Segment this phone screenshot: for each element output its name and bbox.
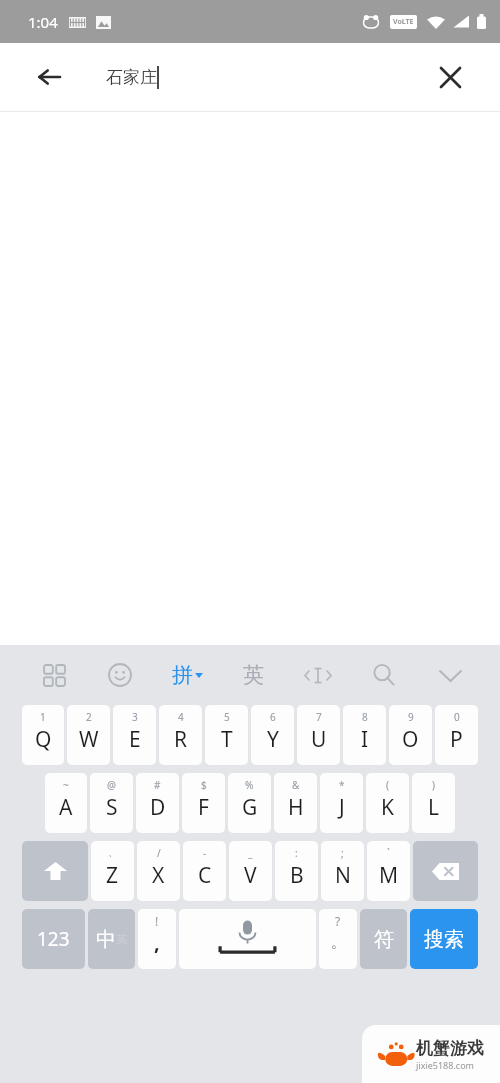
staticText: - bbox=[203, 846, 207, 860]
staticText: O bbox=[402, 725, 419, 754]
button[interactable]: 4 bbox=[159, 705, 202, 765]
staticText: W bbox=[79, 725, 99, 754]
staticText: S bbox=[106, 793, 118, 822]
button[interactable]: 9 bbox=[389, 705, 432, 765]
staticText: VoLTE bbox=[393, 17, 414, 27]
staticText: 。 bbox=[331, 934, 345, 952]
button[interactable]: 8 bbox=[343, 705, 386, 765]
staticText: _ bbox=[248, 846, 253, 860]
button[interactable]: 123 bbox=[22, 909, 85, 969]
staticText: 3 bbox=[132, 710, 138, 724]
button[interactable]: 中 bbox=[88, 909, 135, 969]
staticText: D bbox=[150, 793, 166, 822]
staticText: 4 bbox=[178, 710, 184, 724]
staticText: 6 bbox=[270, 710, 276, 724]
staticText: 123 bbox=[37, 926, 70, 952]
staticText: 1 bbox=[40, 710, 46, 724]
button[interactable]: @ bbox=[90, 773, 133, 833]
button[interactable]: Emoji bbox=[102, 657, 138, 693]
staticText: / bbox=[157, 846, 161, 860]
button[interactable]: 0 bbox=[435, 705, 478, 765]
staticText: # bbox=[154, 778, 161, 792]
button[interactable]: Back bbox=[27, 55, 71, 99]
staticText: ; bbox=[341, 846, 344, 860]
button[interactable]: Clear bbox=[428, 55, 472, 99]
button[interactable]: ` bbox=[367, 841, 410, 901]
staticText: N bbox=[335, 861, 351, 890]
staticText: 1:04 bbox=[28, 12, 58, 32]
staticText: 机蟹游戏 bbox=[416, 1038, 484, 1059]
button[interactable]: 2 bbox=[67, 705, 110, 765]
staticText: 石家庄 bbox=[106, 67, 157, 88]
staticText: 、 bbox=[108, 846, 118, 859]
staticText: M bbox=[379, 861, 399, 890]
staticText: & bbox=[292, 778, 300, 792]
button[interactable]: * bbox=[320, 773, 363, 833]
staticText: ` bbox=[387, 846, 390, 860]
button[interactable]: 搜索 bbox=[410, 909, 478, 969]
button[interactable]: ) bbox=[412, 773, 455, 833]
button[interactable]: ( bbox=[366, 773, 409, 833]
staticText: 英 bbox=[116, 932, 127, 946]
staticText: J bbox=[339, 793, 345, 822]
button[interactable]: Layouts bbox=[36, 657, 72, 693]
staticText: Y bbox=[267, 725, 279, 754]
staticText: * bbox=[339, 778, 345, 792]
staticText: C bbox=[198, 861, 212, 890]
staticText: ~ bbox=[63, 778, 69, 792]
staticText: 8 bbox=[362, 710, 368, 724]
staticText: B bbox=[290, 861, 304, 890]
staticText: T bbox=[221, 725, 233, 754]
button[interactable]: & bbox=[274, 773, 317, 833]
staticText: @ bbox=[107, 778, 116, 792]
button[interactable]: Search bbox=[366, 657, 402, 693]
staticText: 中 bbox=[96, 927, 116, 952]
staticText: I bbox=[361, 725, 369, 754]
staticText: ) bbox=[432, 778, 435, 792]
button[interactable]: 英 bbox=[237, 656, 270, 694]
staticText: K bbox=[381, 793, 394, 822]
button[interactable]: : bbox=[275, 841, 318, 901]
button[interactable]: $ bbox=[182, 773, 225, 833]
button[interactable]: Shift bbox=[22, 841, 88, 901]
staticText: L bbox=[428, 793, 440, 822]
button[interactable]: Space bbox=[179, 909, 316, 969]
button[interactable]: 1 bbox=[22, 705, 64, 765]
staticText: Q bbox=[35, 725, 52, 754]
button[interactable]: 5 bbox=[205, 705, 248, 765]
staticText: 搜索 bbox=[424, 927, 464, 952]
staticText: jixie5188.com bbox=[416, 1059, 474, 1071]
staticText: $ bbox=[201, 778, 207, 792]
button[interactable]: 6 bbox=[251, 705, 294, 765]
staticText: 7 bbox=[316, 710, 322, 724]
staticText: P bbox=[450, 725, 463, 754]
button[interactable]: ; bbox=[321, 841, 364, 901]
staticText: , bbox=[154, 929, 160, 956]
staticText: U bbox=[311, 725, 327, 754]
button[interactable]: % bbox=[228, 773, 271, 833]
button[interactable]: / bbox=[137, 841, 180, 901]
button[interactable]: # bbox=[136, 773, 179, 833]
button[interactable]: ? bbox=[319, 909, 357, 969]
staticText: ( bbox=[386, 778, 389, 792]
button[interactable]: Hide keyboard bbox=[432, 657, 468, 693]
button[interactable]: ! bbox=[138, 909, 176, 969]
button[interactable]: - bbox=[183, 841, 226, 901]
button[interactable]: 3 bbox=[113, 705, 156, 765]
staticText: Z bbox=[106, 861, 119, 890]
staticText: G bbox=[242, 793, 258, 822]
button[interactable]: ~ bbox=[45, 773, 87, 833]
button[interactable]: Move cursor bbox=[300, 657, 336, 693]
staticText: % bbox=[245, 778, 254, 792]
staticText: 拼 bbox=[172, 662, 193, 688]
button[interactable]: Backspace bbox=[413, 841, 478, 901]
button[interactable]: 符 bbox=[360, 909, 407, 969]
button[interactable]: 7 bbox=[297, 705, 340, 765]
button[interactable]: 、 bbox=[91, 841, 134, 901]
button[interactable]: 拼 bbox=[168, 658, 207, 692]
staticText: ? bbox=[335, 913, 341, 929]
staticText: H bbox=[288, 793, 304, 822]
staticText: ! bbox=[155, 913, 159, 929]
button[interactable]: _ bbox=[229, 841, 272, 901]
staticText: V bbox=[244, 861, 257, 890]
